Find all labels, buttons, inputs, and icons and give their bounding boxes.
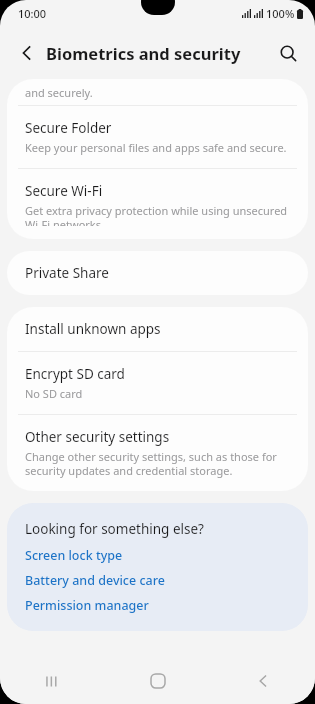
button[interactable]: Home	[105, 658, 210, 704]
button[interactable]: Back	[210, 658, 315, 704]
button[interactable]: Install unknown apps	[7, 307, 308, 351]
staticText: Keep your personal files and apps safe a…	[25, 140, 287, 155]
staticText: No SD card	[25, 386, 83, 401]
button[interactable]: Screen lock type	[25, 547, 290, 564]
staticText: Battery and device care	[25, 572, 165, 589]
button[interactable]: Permission manager	[25, 597, 290, 614]
button[interactable]: Other security settings	[7, 415, 308, 491]
staticText: Encrypt SD card	[25, 365, 125, 383]
staticText: Secure Folder	[25, 119, 112, 137]
staticText: Biometrics and security	[46, 42, 241, 64]
staticText: Get extra privacy protection while using…	[25, 203, 292, 226]
staticText: Change other security settings, such as …	[25, 449, 292, 478]
button[interactable]: Search	[269, 34, 307, 72]
button[interactable]: Back	[8, 34, 46, 72]
button[interactable]: Secure Folder	[7, 106, 308, 168]
button[interactable]: and securely.	[7, 79, 308, 105]
button[interactable]: Encrypt SD card	[7, 352, 308, 414]
staticText: Other security settings	[25, 428, 170, 446]
staticText: 100%	[266, 6, 295, 21]
button[interactable]: Battery and device care	[25, 572, 290, 589]
staticText: Secure Wi-Fi	[25, 182, 103, 200]
staticText: Looking for something else?	[25, 520, 204, 538]
staticText: Screen lock type	[25, 547, 123, 564]
staticText: Permission manager	[25, 597, 149, 614]
button[interactable]: Recent apps	[0, 658, 105, 704]
button[interactable]: Secure Wi-Fi	[7, 169, 308, 239]
staticText: Install unknown apps	[25, 320, 161, 338]
button[interactable]: Private Share	[7, 251, 308, 295]
staticText: and securely.	[25, 85, 93, 100]
staticText: 10:00	[18, 6, 47, 21]
staticText: Private Share	[25, 264, 109, 282]
